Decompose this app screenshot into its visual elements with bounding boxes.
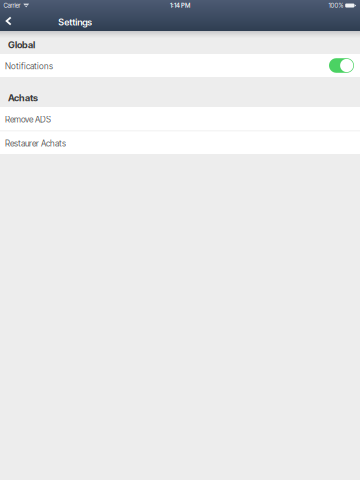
button[interactable]: Remove ADS	[0, 107, 360, 130]
staticText: Global	[8, 39, 35, 50]
button[interactable]: Notifications	[0, 54, 360, 77]
staticText: 1:14 PM	[170, 2, 190, 9]
staticText: Notifications	[5, 61, 53, 71]
staticText: Restaurer Achats	[5, 138, 66, 148]
staticText: Carrier	[4, 2, 21, 9]
button[interactable]: Back	[0, 12, 17, 29]
staticText: Achats	[8, 92, 38, 103]
staticText: 100%	[328, 2, 343, 9]
staticText: Settings	[58, 16, 92, 28]
staticText: Remove ADS	[5, 114, 51, 125]
button[interactable]: Restaurer Achats	[0, 131, 360, 154]
